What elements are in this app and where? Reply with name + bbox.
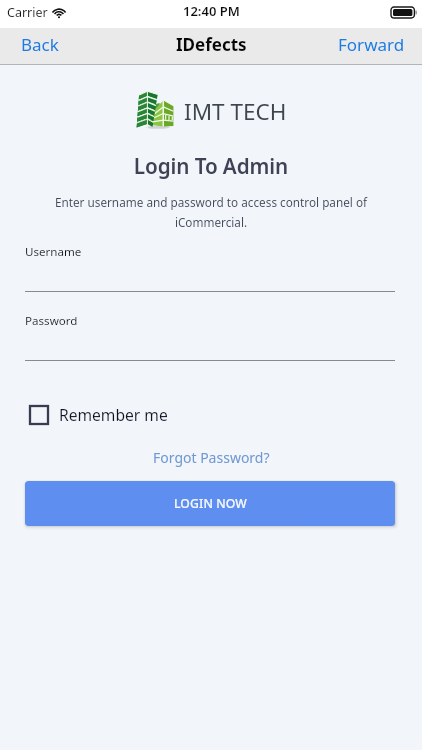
staticText: Forgot Password? <box>153 448 270 467</box>
staticText: LOGIN NOW <box>174 495 247 512</box>
staticText: Login To Admin <box>0 152 422 180</box>
staticText: Remember me <box>59 404 168 425</box>
staticText: 12:40 PM <box>183 2 240 20</box>
button[interactable]: Forward <box>324 27 422 62</box>
staticText: Carrier <box>7 4 48 21</box>
staticText: IDefects <box>176 33 247 56</box>
staticText: Enter username and password to access co… <box>48 194 374 231</box>
button[interactable]: Username <box>25 240 395 292</box>
staticText: Forward <box>338 33 405 56</box>
other: Wi-Fi signal <box>52 6 66 20</box>
button[interactable]: Remember me <box>24 400 174 429</box>
staticText: Username <box>25 244 82 260</box>
button[interactable]: Password <box>25 309 395 361</box>
staticText: Back <box>21 33 59 56</box>
button[interactable]: LOGIN NOW <box>25 481 395 526</box>
staticText: IMT TECH <box>184 96 287 127</box>
other: Battery full <box>391 7 417 18</box>
button[interactable]: Forgot Password? <box>145 444 278 471</box>
staticText: Password <box>25 313 78 329</box>
button[interactable]: Back <box>0 27 73 62</box>
